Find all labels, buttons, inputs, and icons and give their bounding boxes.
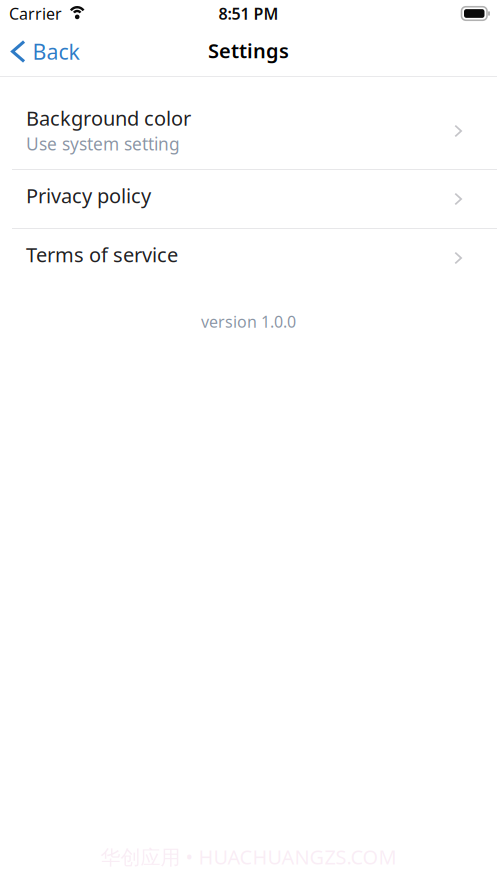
staticText: Settings [208,37,289,64]
staticText: Use system setting [26,132,180,155]
staticText: Back [33,37,80,66]
staticText: version 1.0.0 [201,311,296,332]
button[interactable]: Back [0,29,88,73]
button[interactable]: Terms of service [0,229,497,287]
staticText: Background color [26,105,191,131]
staticText: Terms of service [26,241,178,268]
staticText: Privacy policy [26,182,151,209]
button[interactable]: Privacy policy [0,170,497,228]
staticText: Carrier [9,3,62,24]
button[interactable]: Background color [0,93,497,169]
staticText: 8:51 PM [218,3,278,24]
staticText: 华创应用 • HUACHUANGZS.COM [100,843,396,870]
